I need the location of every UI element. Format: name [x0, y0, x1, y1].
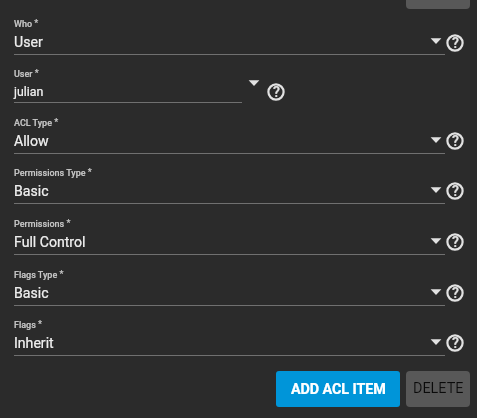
staticText: ? — [452, 183, 459, 200]
staticText: Basic — [14, 285, 49, 302]
staticText: Full Control — [14, 234, 86, 251]
button[interactable]: DELETE — [406, 371, 470, 407]
staticText: User — [14, 34, 43, 51]
button[interactable]: Help for Flags Type — [444, 282, 466, 304]
button[interactable]: Open dropdown for Permissions — [427, 232, 445, 250]
staticText: julian — [14, 84, 44, 99]
staticText: Inherit — [14, 335, 54, 352]
button[interactable]: Help for Flags — [444, 332, 466, 354]
staticText: ? — [452, 335, 459, 352]
staticText: ? — [452, 35, 459, 52]
staticText: ACL Type * — [14, 117, 59, 129]
staticText: ? — [452, 234, 459, 251]
button[interactable]: Help for Permissions — [444, 231, 466, 253]
staticText: ? — [273, 84, 280, 101]
button[interactable]: ADD ACL ITEM — [276, 371, 400, 407]
button[interactable]: Help for Permissions Type — [444, 180, 466, 202]
staticText: Flags * — [14, 319, 43, 331]
button[interactable]: Open dropdown for Who — [427, 32, 445, 50]
button[interactable]: Open dropdown for Flags Type — [427, 283, 445, 301]
button[interactable]: Open dropdown for Flags — [427, 333, 445, 351]
button[interactable]: Help for User — [265, 81, 287, 103]
button[interactable]: Help for Who — [444, 32, 466, 54]
staticText: ? — [452, 285, 459, 302]
staticText: ? — [452, 133, 459, 150]
button[interactable]: Open dropdown for Permissions Type — [427, 181, 445, 199]
staticText: Flags Type * — [14, 269, 64, 281]
button[interactable]: Open dropdown for User — [245, 74, 263, 92]
staticText: Basic — [14, 183, 49, 200]
button[interactable]: Open dropdown for ACL Type — [427, 131, 445, 149]
staticText: Who * — [14, 18, 39, 30]
staticText: Allow — [14, 133, 49, 150]
button[interactable]: Help for ACL Type — [444, 130, 466, 152]
staticText: Permissions Type * — [14, 167, 92, 179]
staticText: User * — [14, 68, 39, 80]
staticText: DELETE — [413, 380, 464, 397]
staticText: ADD ACL ITEM — [291, 381, 386, 398]
staticText: Permissions * — [14, 218, 71, 230]
button[interactable]: Cancel — [406, 0, 470, 9]
